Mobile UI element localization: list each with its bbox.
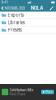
button[interactable]: Play [41,90,54,94]
button[interactable]: Exports [0,12,56,19]
button[interactable]: Compose [48,5,56,11]
staticText: Paul Pope [10,92,26,96]
staticText: Fehlfarben Mix [10,88,34,92]
button[interactable]: Presets [0,26,56,34]
button[interactable]: Libraries [0,19,56,26]
staticText: Presets [8,27,22,33]
staticText: NOLA [31,5,43,11]
staticText: Libraries [8,20,25,25]
button[interactable]: Nicolas.333 [0,5,25,11]
staticText: Nicolas.333 [4,6,24,10]
staticText: 9:41 [1,0,7,4]
staticText: Exports [8,13,24,18]
staticText: Play [46,90,53,94]
